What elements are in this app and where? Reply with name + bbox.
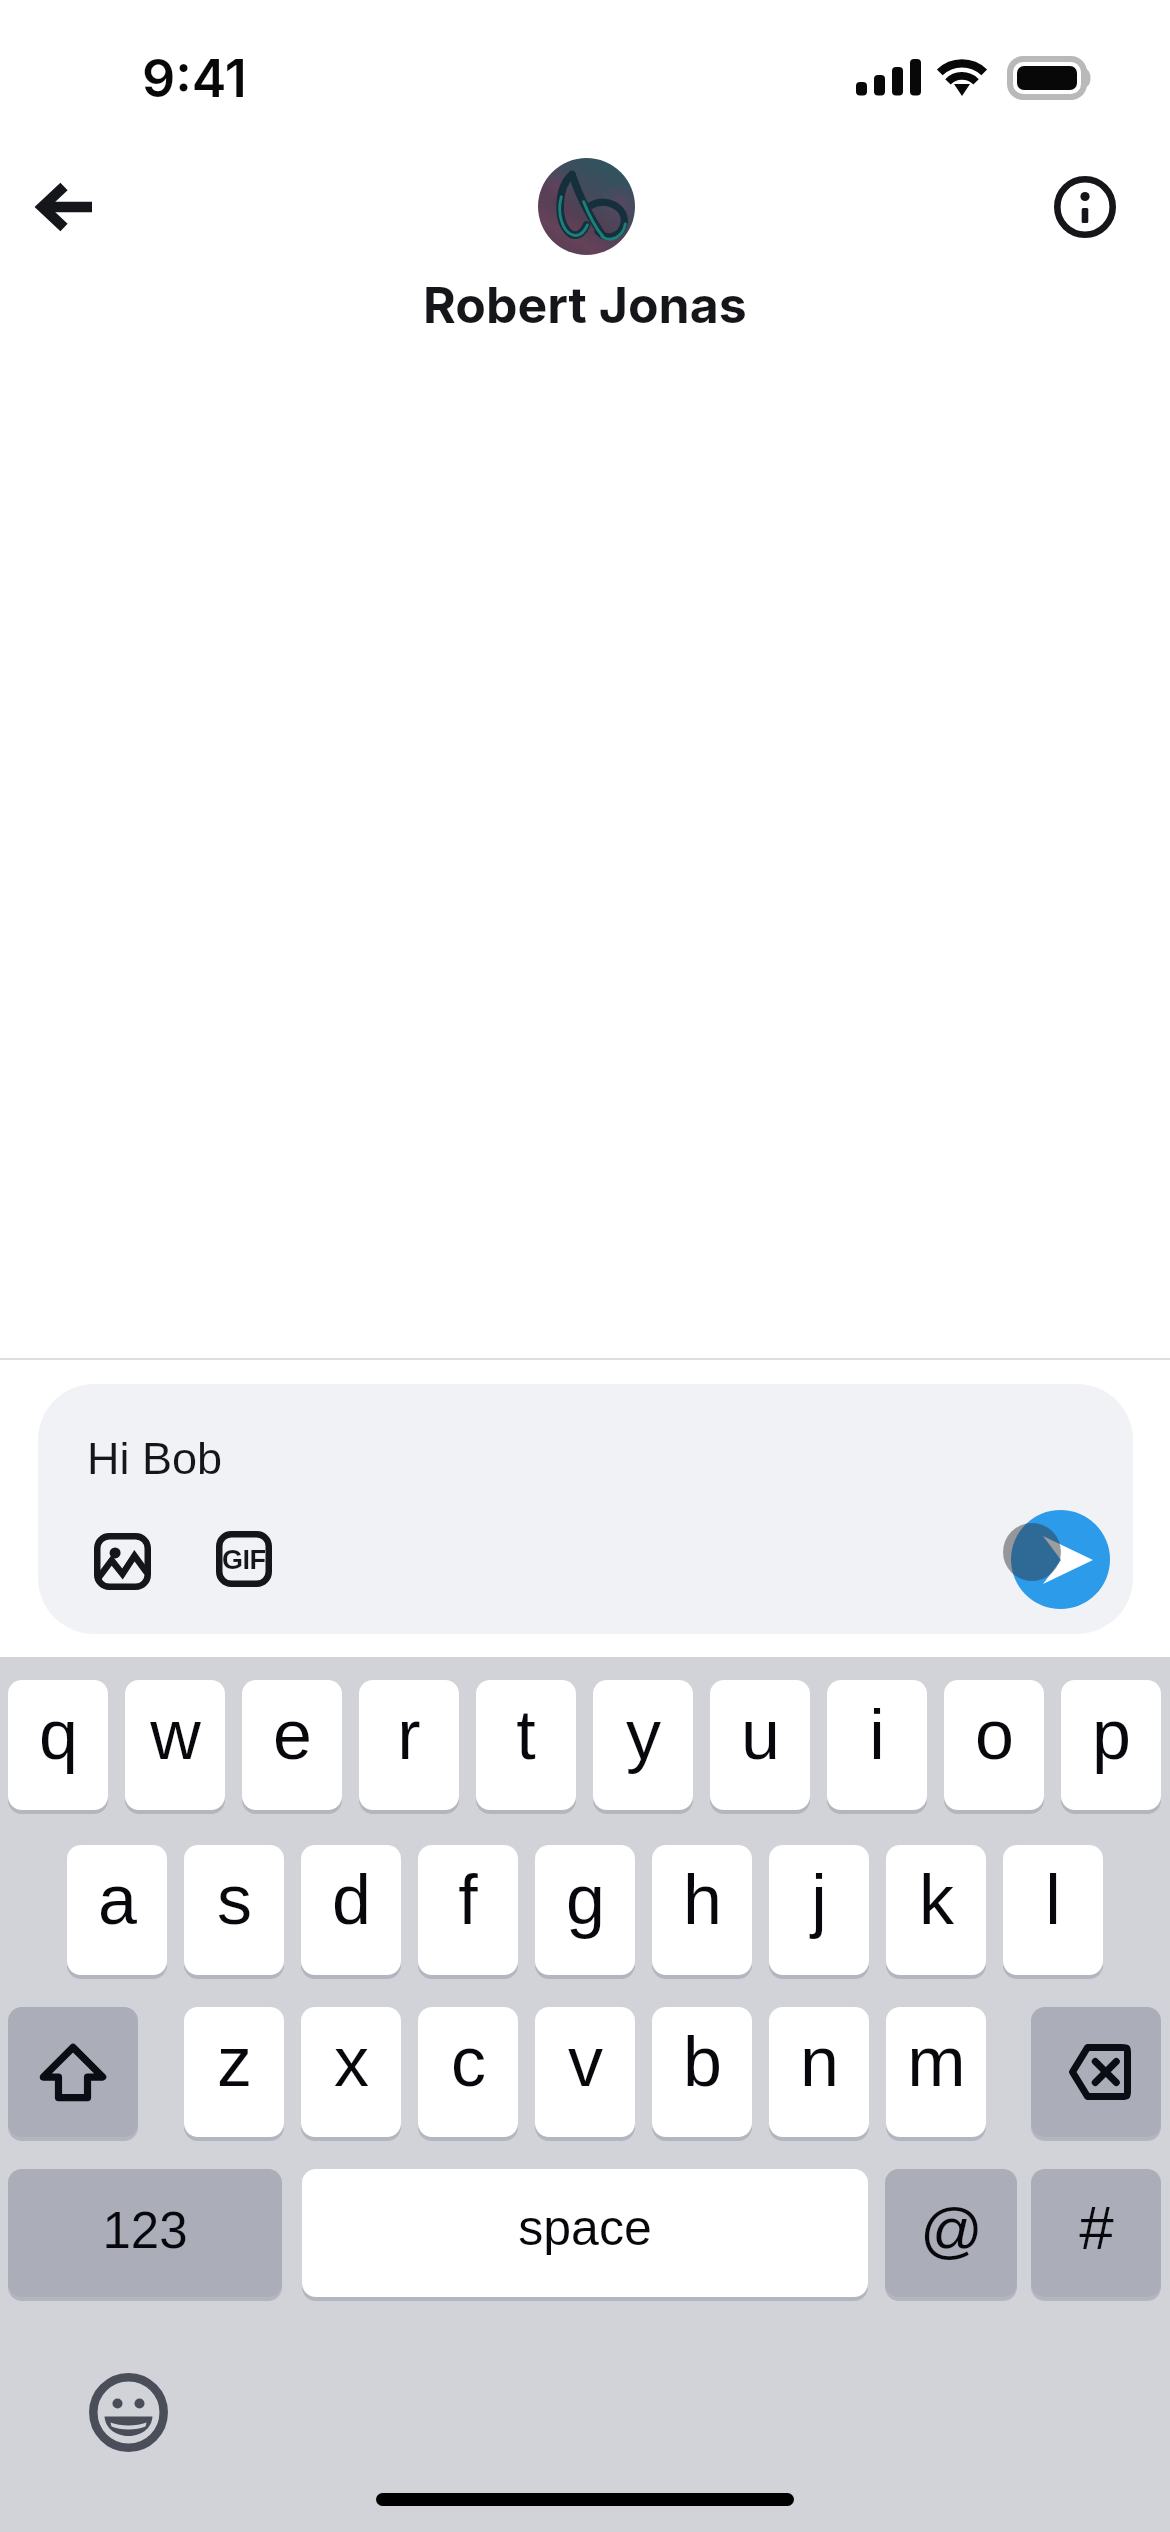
- staticText: v: [568, 2023, 603, 2101]
- staticText: s: [217, 1861, 252, 1939]
- staticText: #: [1079, 2193, 1114, 2262]
- staticText: a: [98, 1861, 137, 1939]
- staticText: Robert Jonas: [423, 275, 747, 335]
- staticText: r: [397, 1696, 421, 1774]
- staticText: h: [683, 1861, 722, 1939]
- staticText: x: [334, 2023, 369, 2101]
- button[interactable]: t: [476, 1680, 576, 1810]
- staticText: g: [566, 1861, 605, 1939]
- staticText: f: [458, 1861, 478, 1939]
- button[interactable]: @: [885, 2169, 1017, 2297]
- button[interactable]: c: [418, 2007, 518, 2137]
- button[interactable]: Emoji: [86, 2370, 170, 2454]
- staticText: e: [273, 1696, 312, 1774]
- button[interactable]: p: [1061, 1680, 1161, 1810]
- staticText: 123: [102, 2202, 188, 2259]
- button[interactable]: y: [593, 1680, 693, 1810]
- button[interactable]: Back: [23, 164, 109, 250]
- button[interactable]: space: [302, 2169, 868, 2297]
- staticText: space: [518, 2200, 652, 2256]
- button[interactable]: Backspace: [1031, 2007, 1161, 2137]
- button[interactable]: #: [1031, 2169, 1161, 2297]
- staticText: t: [516, 1696, 536, 1774]
- button[interactable]: l: [1003, 1845, 1103, 1975]
- button[interactable]: b: [652, 2007, 752, 2137]
- button[interactable]: Send: [1011, 1510, 1110, 1609]
- button[interactable]: Info: [1042, 164, 1128, 250]
- button[interactable]: x: [301, 2007, 401, 2137]
- staticText: w: [150, 1696, 201, 1774]
- staticText: j: [811, 1861, 827, 1939]
- staticText: q: [39, 1696, 78, 1774]
- button[interactable]: q: [8, 1680, 108, 1810]
- staticText: d: [332, 1861, 371, 1939]
- staticText: c: [451, 2023, 486, 2101]
- button[interactable]: r: [359, 1680, 459, 1810]
- button[interactable]: Shift: [8, 2007, 138, 2137]
- button[interactable]: Profile photo: [538, 158, 635, 255]
- button[interactable]: g: [535, 1845, 635, 1975]
- staticText: l: [1045, 1861, 1061, 1939]
- button[interactable]: Attach image: [74, 1513, 170, 1609]
- button[interactable]: h: [652, 1845, 752, 1975]
- button[interactable]: s: [184, 1845, 284, 1975]
- button[interactable]: Hi Bob: [38, 1384, 1133, 1634]
- staticText: u: [741, 1696, 780, 1774]
- staticText: i: [869, 1696, 885, 1774]
- button[interactable]: w: [125, 1680, 225, 1810]
- button[interactable]: a: [67, 1845, 167, 1975]
- staticText: GIF: [222, 1545, 266, 1575]
- staticText: Hi Bob: [87, 1433, 223, 1483]
- staticText: @: [920, 2195, 983, 2264]
- staticText: m: [907, 2023, 966, 2101]
- button[interactable]: z: [184, 2007, 284, 2137]
- staticText: k: [919, 1861, 954, 1939]
- button[interactable]: Attach GIF: [196, 1511, 292, 1607]
- button[interactable]: i: [827, 1680, 927, 1810]
- button[interactable]: m: [886, 2007, 986, 2137]
- staticText: o: [975, 1696, 1014, 1774]
- staticText: 9:41: [142, 47, 247, 110]
- staticText: p: [1092, 1696, 1131, 1774]
- button[interactable]: o: [944, 1680, 1044, 1810]
- staticText: z: [217, 2023, 252, 2101]
- button[interactable]: 123: [8, 2169, 282, 2297]
- button[interactable]: f: [418, 1845, 518, 1975]
- button[interactable]: k: [886, 1845, 986, 1975]
- button[interactable]: v: [535, 2007, 635, 2137]
- button[interactable]: u: [710, 1680, 810, 1810]
- button[interactable]: j: [769, 1845, 869, 1975]
- staticText: y: [626, 1696, 661, 1774]
- staticText: n: [800, 2023, 839, 2101]
- button[interactable]: e: [242, 1680, 342, 1810]
- button[interactable]: d: [301, 1845, 401, 1975]
- staticText: b: [683, 2023, 722, 2101]
- button[interactable]: n: [769, 2007, 869, 2137]
